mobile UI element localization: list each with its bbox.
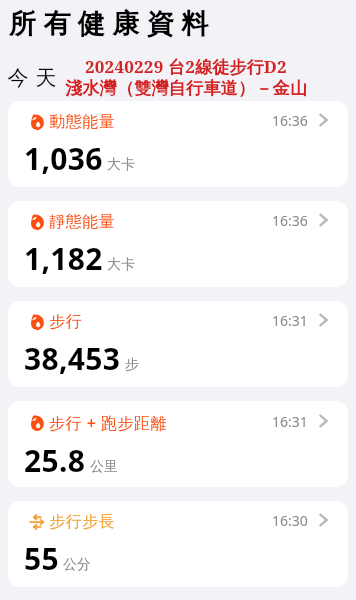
staticText: 1,182 bbox=[24, 238, 103, 279]
staticText: 步行 + 跑步距離 bbox=[49, 412, 167, 434]
staticText: 公里 bbox=[90, 458, 118, 476]
button[interactable]: 步行步長 bbox=[8, 501, 348, 587]
staticText: 公分 bbox=[63, 556, 91, 574]
staticText: 16:31 bbox=[272, 412, 308, 431]
staticText: 1,036 bbox=[24, 138, 103, 179]
staticText: 大卡 bbox=[107, 156, 135, 174]
staticText: 大卡 bbox=[107, 256, 135, 274]
button[interactable]: 步行 bbox=[8, 301, 348, 387]
button[interactable]: 靜態能量 bbox=[8, 201, 348, 287]
staticText: 16:31 bbox=[272, 311, 308, 330]
staticText: 步 bbox=[125, 356, 139, 374]
staticText: 動態能量 bbox=[49, 112, 115, 132]
staticText: 55 bbox=[24, 538, 59, 579]
button[interactable]: 步行 + 跑步距離 bbox=[8, 401, 348, 487]
staticText: 25.8 bbox=[24, 440, 86, 481]
staticText: 今天 bbox=[4, 65, 60, 91]
staticText: 所有健康資料 bbox=[5, 7, 212, 41]
staticText: 16:30 bbox=[272, 511, 308, 530]
staticText: 16:36 bbox=[272, 111, 308, 130]
staticText: 38,453 bbox=[24, 338, 121, 379]
staticText: 步行 bbox=[49, 312, 82, 332]
staticText: 20240229 台2線徒步行D2 bbox=[85, 55, 287, 78]
staticText: 靜態能量 bbox=[49, 212, 115, 232]
button[interactable]: 動態能量 bbox=[8, 101, 348, 187]
staticText: 步行步長 bbox=[49, 512, 115, 532]
staticText: 淺水灣（雙灣自行車道）－金山 bbox=[65, 78, 308, 99]
staticText: 16:36 bbox=[272, 211, 308, 230]
